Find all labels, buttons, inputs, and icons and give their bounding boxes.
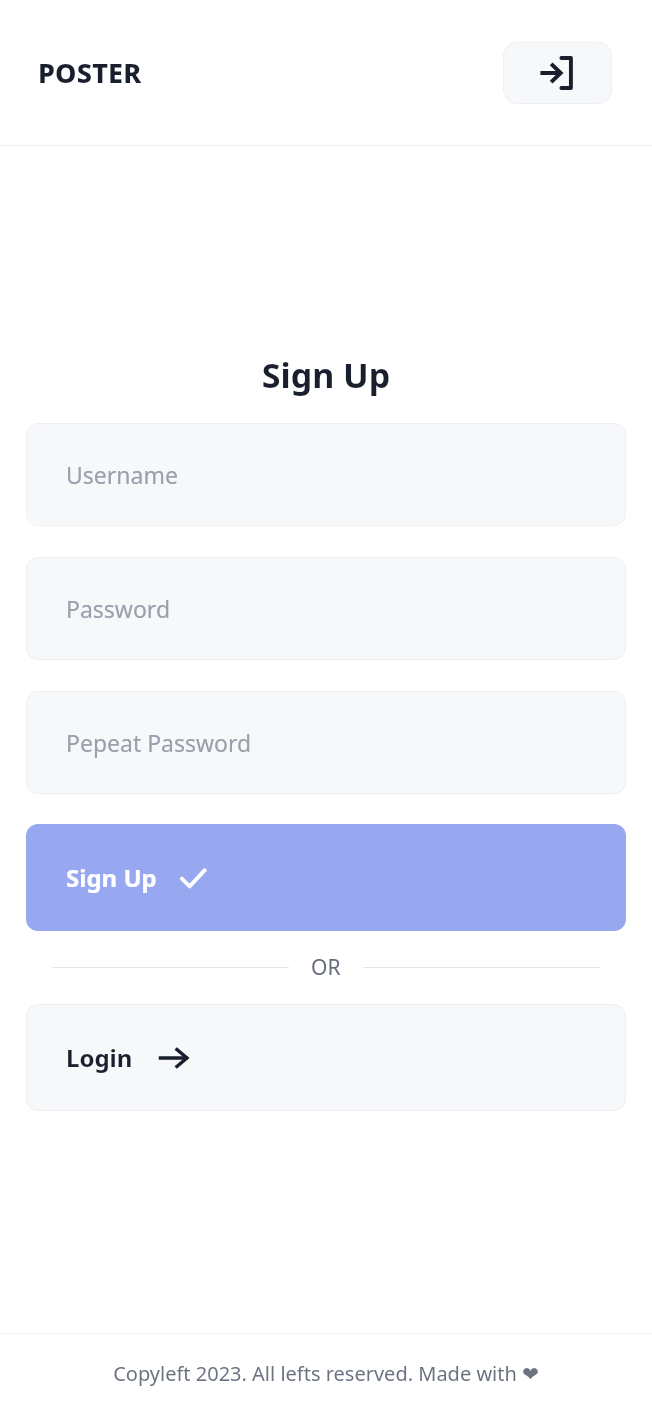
staticText: OR [311, 953, 341, 982]
staticText: POSTER [38, 54, 142, 91]
staticText: Sign Up [0, 352, 652, 398]
staticText: Pepeat Password [66, 727, 252, 758]
staticText: Login [66, 1041, 133, 1074]
button[interactable]: Username [26, 423, 626, 526]
staticText: Password [66, 593, 171, 624]
staticText: Username [66, 459, 178, 490]
button[interactable]: Password [26, 557, 626, 660]
button[interactable]: Login [26, 1004, 626, 1111]
staticText: Sign Up [66, 861, 157, 894]
button[interactable]: Sign Up [26, 824, 626, 931]
button[interactable]: Pepeat Password [26, 691, 626, 794]
button[interactable]: Login [503, 42, 612, 104]
staticText: Copyleft 2023. All lefts reserved. Made … [113, 1360, 539, 1387]
